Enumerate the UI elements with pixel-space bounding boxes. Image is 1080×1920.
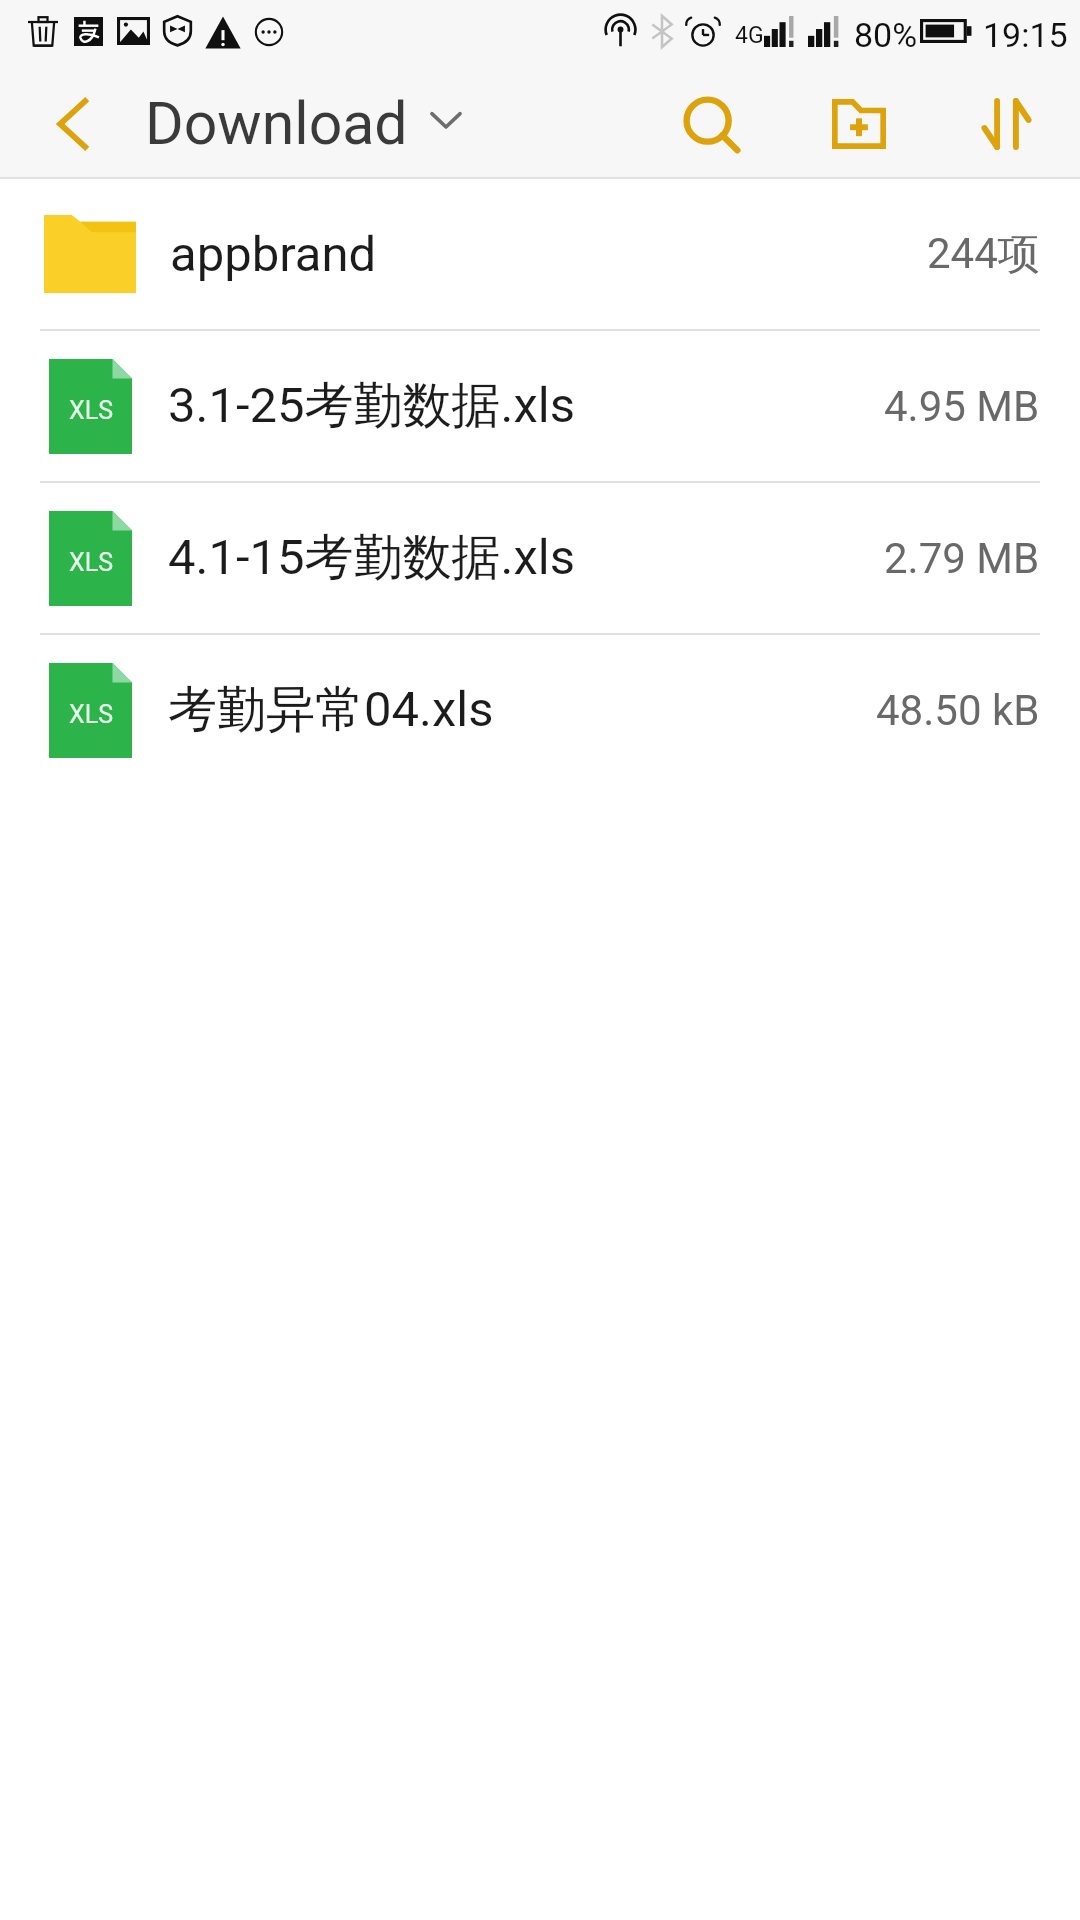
staticText: Download: [145, 89, 408, 158]
staticText: 3.1-25考勤数据.xls: [168, 375, 576, 437]
button[interactable]: appbrand: [0, 179, 1080, 329]
staticText: XLS: [69, 700, 113, 729]
staticText: XLS: [69, 548, 113, 577]
button[interactable]: XLS: [0, 635, 1080, 785]
button[interactable]: XLS: [0, 483, 1080, 633]
staticText: 4.1-15考勤数据.xls: [168, 527, 576, 589]
button[interactable]: Search: [636, 70, 786, 177]
staticText: 19:15: [983, 15, 1068, 55]
button[interactable]: Download: [145, 70, 462, 177]
staticText: 48.50 kB: [876, 686, 1040, 735]
button[interactable]: New folder: [786, 70, 932, 177]
staticText: 244项: [927, 228, 1040, 281]
button[interactable]: XLS: [0, 331, 1080, 481]
staticText: 考勤异常04.xls: [168, 679, 494, 741]
staticText: 4.95 MB: [884, 382, 1040, 431]
staticText: 2.79 MB: [884, 534, 1040, 583]
staticText: XLS: [69, 396, 113, 425]
staticText: appbrand: [170, 226, 377, 283]
staticText: 4G: [735, 22, 764, 49]
button[interactable]: Sort: [932, 70, 1080, 177]
staticText: 80%: [854, 15, 918, 55]
button[interactable]: Back: [0, 70, 145, 177]
